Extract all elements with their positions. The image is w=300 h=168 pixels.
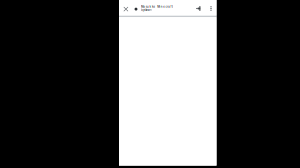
button[interactable]: More options xyxy=(205,0,216,16)
staticText: Masuk ke Minecraft xyxy=(141,5,173,8)
button[interactable]: Share xyxy=(191,0,205,16)
button[interactable]: Masuk ke Minecraft xyxy=(133,0,173,16)
button[interactable]: Close xyxy=(119,0,133,16)
staticText: login.live.com xyxy=(141,8,151,12)
